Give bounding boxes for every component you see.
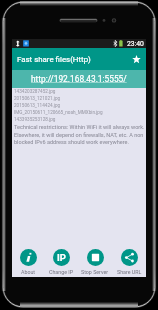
button[interactable]: Change IP	[45, 245, 78, 275]
button[interactable]: Favorite	[127, 50, 146, 69]
staticText: Fast share files(Http)	[17, 55, 91, 64]
button[interactable]: http://192.168.43.1:5555/	[12, 70, 146, 88]
staticText: Technical restrictions: Within WiFi it w…	[14, 124, 145, 145]
staticText: http://192.168.43.1:5555/	[31, 74, 127, 84]
staticText: About	[21, 269, 36, 275]
staticText: 20150613_121021.jpg	[14, 96, 61, 103]
button[interactable]: Share URL	[112, 245, 146, 275]
staticText: Share URL	[117, 269, 142, 275]
staticText: 1433935253128.jpg	[14, 117, 56, 124]
staticText: 23:40	[127, 40, 144, 48]
button[interactable]: Stop Server	[78, 245, 112, 275]
staticText: Change IP	[49, 269, 74, 275]
staticText: IP	[57, 252, 66, 263]
button[interactable]: About	[12, 245, 45, 275]
staticText: Stop Server	[81, 269, 109, 275]
staticText: 1434203287452.jpg	[14, 89, 56, 96]
staticText: 20150613_114424.jpg	[14, 103, 61, 110]
staticText: IMG_20150611_120665_noah_MMXbin.jpg	[14, 110, 103, 117]
